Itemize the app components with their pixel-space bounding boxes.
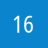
button[interactable]: 16 <box>0 0 47 48</box>
staticText: 16 <box>12 9 34 39</box>
